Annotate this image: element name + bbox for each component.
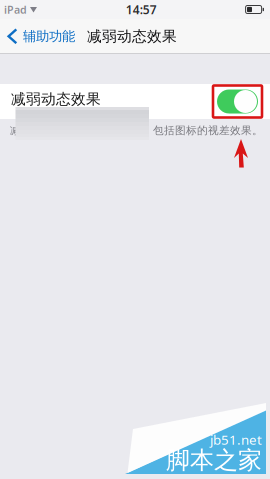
staticText: 减弱动态效果	[11, 90, 101, 108]
staticText: 减少用户界面上的动态效果，包括图标的视差效果。	[10, 124, 263, 137]
staticText: 脚本之家	[166, 445, 262, 475]
staticText: jb51.net	[210, 431, 262, 448]
staticText: 辅助功能	[23, 28, 75, 44]
staticText: 14:57	[126, 1, 157, 17]
button[interactable]: 减弱动态效果	[213, 85, 262, 117]
staticText: iPad	[4, 2, 27, 17]
button[interactable]: 辅助功能	[0, 24, 79, 48]
staticText: 减弱动态效果	[87, 27, 177, 45]
